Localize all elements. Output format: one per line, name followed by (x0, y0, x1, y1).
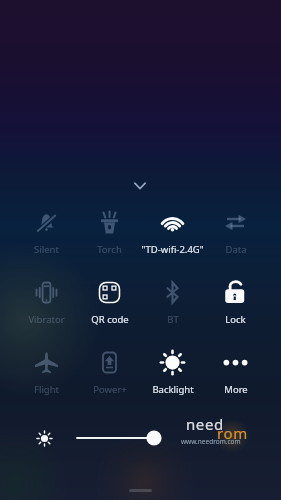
button[interactable]: Power+ (78, 338, 141, 408)
staticText: More (224, 383, 248, 396)
staticText: BT (167, 313, 179, 326)
staticText: Flight (34, 383, 59, 396)
staticText: Lock (225, 313, 246, 326)
button[interactable]: Silent (14, 198, 78, 268)
button[interactable]: "TD-wifi-2.4G" (141, 198, 204, 268)
staticText: Power+ (93, 383, 127, 396)
staticText: Backlight (152, 383, 194, 396)
button[interactable]: Data (204, 198, 267, 268)
button[interactable]: Collapse panel (124, 170, 156, 202)
button[interactable]: QR code (78, 268, 141, 338)
button[interactable]: BT (141, 268, 204, 338)
button[interactable]: Flight (14, 338, 78, 408)
button[interactable]: Vibrator (14, 268, 78, 338)
staticText: www.needrom.com (181, 437, 241, 446)
staticText: Vibrator (28, 313, 65, 326)
staticText: QR code (91, 313, 129, 326)
button[interactable]: Lock (204, 268, 267, 338)
button[interactable]: Auto brightness (31, 425, 57, 451)
staticText: need (186, 414, 224, 434)
staticText: Data (225, 243, 247, 256)
staticText: Silent (34, 243, 59, 256)
staticText: Torch (97, 243, 122, 256)
staticText: rom (217, 423, 248, 443)
button[interactable]: Backlight (141, 338, 204, 408)
button[interactable]: Brightness slider (70, 425, 270, 451)
staticText: "TD-wifi-2.4G" (141, 243, 204, 256)
button[interactable]: Torch (78, 198, 141, 268)
button[interactable]: More (204, 338, 267, 408)
